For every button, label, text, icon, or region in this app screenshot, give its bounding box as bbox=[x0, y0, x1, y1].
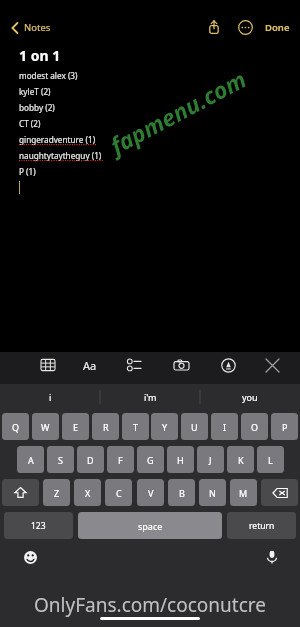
button[interactable]: E bbox=[62, 413, 89, 440]
button[interactable]: V bbox=[137, 479, 164, 506]
button[interactable]: W bbox=[32, 413, 59, 440]
staticText: F bbox=[118, 454, 123, 466]
button[interactable]: i'm bbox=[100, 384, 200, 410]
button[interactable]: Close keyboard bbox=[259, 352, 285, 378]
button[interactable]: F bbox=[107, 446, 134, 473]
button[interactable]: S bbox=[47, 446, 74, 473]
staticText: O bbox=[251, 421, 259, 433]
staticText: space bbox=[138, 520, 163, 532]
staticText: i bbox=[49, 391, 52, 403]
staticText: you bbox=[242, 391, 258, 403]
button[interactable]: 123 bbox=[4, 512, 73, 539]
button[interactable]: Markup bbox=[215, 352, 241, 378]
staticText: D bbox=[87, 454, 94, 466]
button[interactable]: i bbox=[0, 384, 100, 410]
button[interactable]: Shift bbox=[2, 479, 39, 506]
staticText: T bbox=[133, 421, 139, 433]
staticText: J bbox=[209, 454, 212, 466]
staticText: Z bbox=[54, 487, 60, 499]
staticText: R bbox=[103, 421, 109, 433]
staticText: Y bbox=[162, 421, 168, 433]
button[interactable]: X bbox=[74, 479, 101, 506]
button[interactable]: Emoji bbox=[18, 545, 42, 569]
button[interactable]: H bbox=[167, 446, 194, 473]
button[interactable]: C bbox=[105, 479, 132, 506]
staticText: kyleT (2) bbox=[19, 86, 51, 97]
staticText: i'm bbox=[144, 391, 157, 403]
staticText: S bbox=[58, 454, 63, 466]
button[interactable]: R bbox=[92, 413, 119, 440]
staticText: X bbox=[85, 487, 91, 499]
staticText: W bbox=[41, 421, 50, 433]
staticText: OnlyFans.com/coconutcre bbox=[34, 592, 266, 618]
button[interactable]: you bbox=[200, 384, 300, 410]
staticText: Done bbox=[265, 21, 290, 34]
button[interactable]: Camera bbox=[168, 352, 194, 378]
staticText: 123 bbox=[31, 520, 46, 532]
staticText: A bbox=[28, 454, 34, 466]
button[interactable]: Y bbox=[151, 413, 178, 440]
button[interactable]: Done bbox=[262, 16, 293, 39]
staticText: N bbox=[209, 487, 216, 499]
button[interactable]: A bbox=[17, 446, 44, 473]
button[interactable]: Dictate bbox=[260, 545, 284, 569]
staticText: L bbox=[268, 454, 273, 466]
staticText: P bbox=[282, 421, 288, 433]
button[interactable]: Insert table bbox=[35, 352, 61, 378]
button[interactable]: P bbox=[271, 413, 298, 440]
button[interactable]: Backspace bbox=[261, 479, 298, 506]
button[interactable]: G bbox=[137, 446, 164, 473]
button[interactable]: I bbox=[211, 413, 238, 440]
staticText: V bbox=[148, 487, 154, 499]
button[interactable]: Share bbox=[202, 15, 226, 39]
staticText: H bbox=[177, 454, 184, 466]
staticText: naughtytaytheguy (1) bbox=[19, 150, 102, 161]
staticText: M bbox=[239, 487, 248, 499]
button[interactable]: return bbox=[227, 512, 296, 539]
button[interactable]: B bbox=[168, 479, 195, 506]
staticText: B bbox=[179, 487, 185, 499]
staticText: CT (2) bbox=[19, 118, 41, 129]
staticText: bobby (2) bbox=[19, 102, 55, 113]
staticText: fapmenu.com bbox=[104, 63, 251, 160]
button[interactable]: M bbox=[230, 479, 257, 506]
button[interactable]: Checklist bbox=[121, 352, 147, 378]
button[interactable]: D bbox=[77, 446, 104, 473]
button[interactable]: N bbox=[199, 479, 226, 506]
staticText: P (1) bbox=[19, 166, 36, 177]
staticText: E bbox=[73, 421, 79, 433]
button[interactable]: Format text bbox=[77, 352, 103, 378]
button[interactable]: Notes bbox=[7, 17, 53, 38]
staticText: G bbox=[147, 454, 154, 466]
staticText: 1 on 1 bbox=[19, 46, 61, 65]
staticText: U bbox=[191, 421, 198, 433]
button[interactable]: O bbox=[241, 413, 268, 440]
staticText: Notes bbox=[24, 21, 51, 34]
staticText: Q bbox=[12, 421, 20, 433]
button[interactable]: K bbox=[227, 446, 254, 473]
staticText: K bbox=[238, 454, 244, 466]
button[interactable]: space bbox=[78, 512, 222, 539]
button[interactable]: Q bbox=[2, 413, 29, 440]
staticText: Aa bbox=[83, 358, 97, 373]
staticText: C bbox=[116, 487, 122, 499]
button[interactable]: More options bbox=[233, 15, 257, 39]
staticText: return bbox=[249, 520, 275, 532]
button[interactable]: U bbox=[181, 413, 208, 440]
staticText: modest alex (3) bbox=[19, 70, 78, 81]
staticText: gingeradventure (1) bbox=[19, 134, 96, 145]
button[interactable]: T bbox=[122, 413, 149, 440]
staticText: I bbox=[223, 421, 227, 433]
button[interactable]: L bbox=[257, 446, 284, 473]
button[interactable]: Z bbox=[43, 479, 70, 506]
button[interactable]: J bbox=[197, 446, 224, 473]
